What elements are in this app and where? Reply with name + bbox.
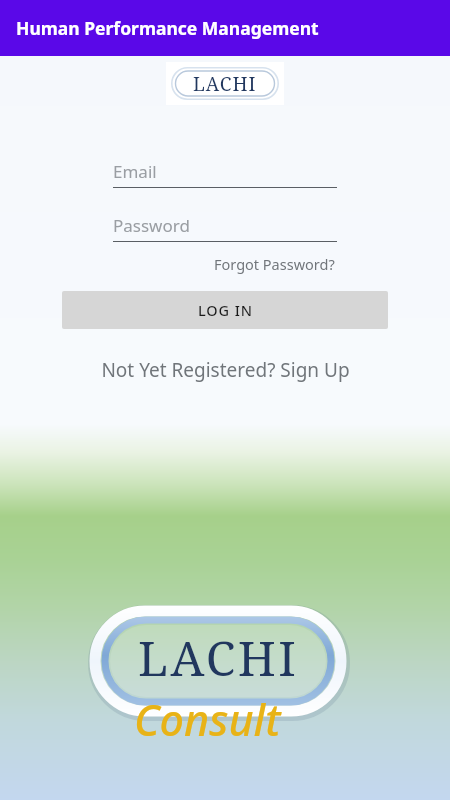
button[interactable]: Password (113, 214, 337, 242)
button[interactable]: Not Yet Registered? Sign Up (95, 353, 356, 387)
staticText: Consult (134, 690, 281, 749)
button[interactable]: LOG IN (62, 291, 388, 329)
staticText: Human Performance Management (16, 16, 319, 40)
staticText: Forgot Password? (214, 254, 335, 274)
staticText: LOG IN (198, 300, 253, 320)
staticText: LACHI (138, 625, 299, 690)
button[interactable]: Email (113, 160, 337, 188)
staticText: LACHI (193, 71, 257, 97)
other: Lachi Consult logo (88, 604, 348, 764)
button[interactable]: Forgot Password? (212, 251, 337, 277)
staticText: Password (113, 214, 190, 237)
staticText: Not Yet Registered? Sign Up (101, 357, 350, 383)
staticText: Email (113, 160, 157, 183)
